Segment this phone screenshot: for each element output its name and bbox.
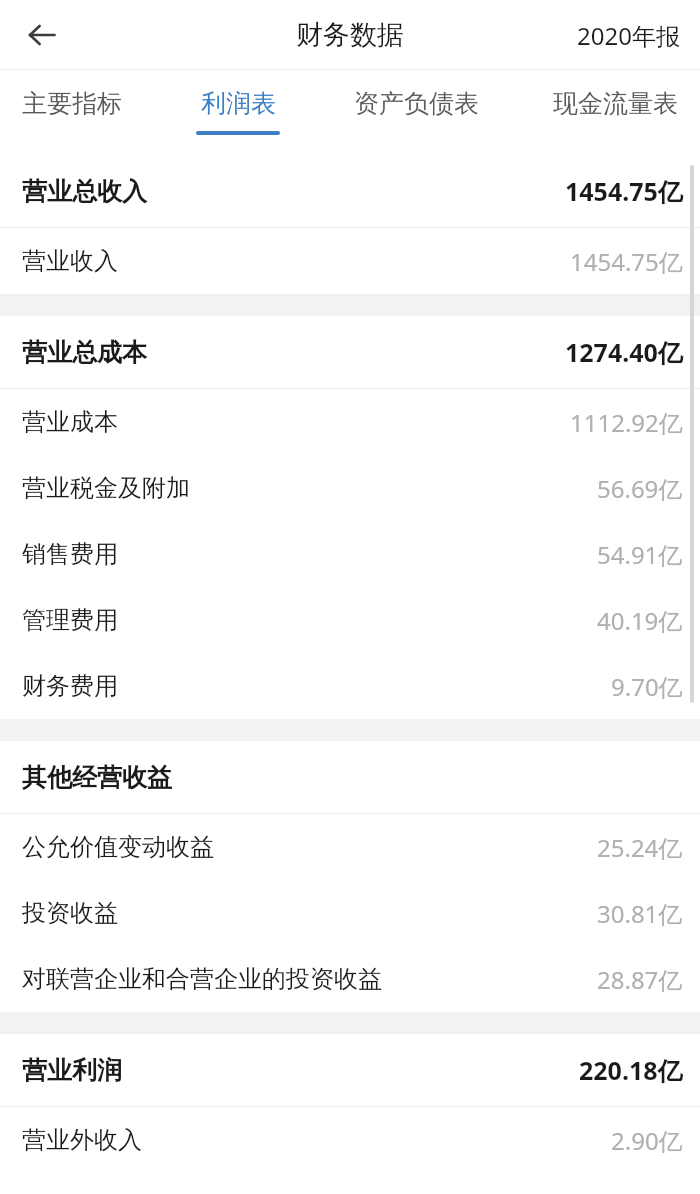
button[interactable]: 财务费用 [0, 653, 700, 719]
button[interactable]: Back [14, 7, 70, 63]
button[interactable]: 营业收入 [0, 228, 700, 294]
staticText: 1112.92亿 [570, 406, 683, 439]
staticText: 现金流量表 [553, 88, 678, 119]
staticText: 30.81亿 [597, 897, 683, 930]
button[interactable]: 营业税金及附加 [0, 455, 700, 521]
staticText: 56.69亿 [597, 472, 683, 505]
button[interactable]: 管理费用 [0, 587, 700, 653]
staticText: 对联营企业和合营企业的投资收益 [22, 964, 382, 994]
button[interactable]: 利润表 [188, 70, 288, 135]
staticText: 营业总收入 [22, 176, 147, 207]
button[interactable]: 营业利润 [0, 1034, 700, 1106]
button[interactable]: 现金流量表 [545, 70, 686, 131]
staticText: 利润表 [201, 88, 276, 119]
staticText: 9.70亿 [611, 670, 683, 703]
staticText: 1454.75亿 [565, 174, 683, 208]
staticText: 营业总成本 [22, 337, 147, 368]
staticText: 营业税金及附加 [22, 473, 190, 503]
button[interactable]: 主要指标 [14, 70, 130, 131]
staticText: 25.24亿 [597, 831, 683, 864]
button[interactable]: 资产负债表 [346, 70, 487, 131]
staticText: 营业成本 [22, 407, 118, 437]
staticText: 营业利润 [22, 1055, 122, 1086]
button[interactable]: 营业总成本 [0, 316, 700, 388]
button[interactable]: 其他经营收益 [0, 741, 700, 813]
staticText: 2.90亿 [611, 1124, 683, 1157]
button[interactable]: 营业成本 [0, 389, 700, 455]
staticText: 1274.40亿 [565, 335, 683, 369]
staticText: 其他经营收益 [22, 762, 172, 793]
staticText: 管理费用 [22, 605, 118, 635]
button[interactable]: 对联营企业和合营企业的投资收益 [0, 946, 700, 1012]
button[interactable]: 营业外收入 [0, 1107, 700, 1173]
staticText: 54.91亿 [597, 538, 683, 571]
staticText: 40.19亿 [597, 604, 683, 637]
button[interactable]: 投资收益 [0, 880, 700, 946]
staticText: 1454.75亿 [570, 245, 683, 278]
button[interactable]: 销售费用 [0, 521, 700, 587]
staticText: 销售费用 [22, 539, 118, 569]
staticText: 公允价值变动收益 [22, 832, 214, 862]
button[interactable]: 营业总收入 [0, 155, 700, 227]
staticText: 财务数据 [296, 18, 404, 52]
staticText: 28.87亿 [597, 963, 683, 996]
staticText: 2020年报 [577, 19, 680, 52]
button[interactable]: 2020年报 [573, 11, 684, 60]
staticText: 220.18亿 [579, 1053, 683, 1087]
staticText: 资产负债表 [354, 88, 479, 119]
button[interactable]: 公允价值变动收益 [0, 814, 700, 880]
staticText: 营业外收入 [22, 1125, 142, 1155]
staticText: 投资收益 [22, 898, 118, 928]
staticText: 营业收入 [22, 246, 118, 276]
staticText: 财务费用 [22, 671, 118, 701]
staticText: 主要指标 [22, 88, 122, 119]
